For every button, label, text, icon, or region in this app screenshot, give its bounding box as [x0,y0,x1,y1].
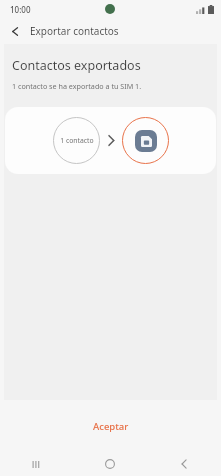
button[interactable]: Back [147,452,221,476]
button[interactable]: Back [0,18,30,44]
button[interactable]: 1 contacto [5,107,216,174]
staticText: Exportar contactos [30,24,119,38]
button[interactable]: Home [73,452,147,476]
button[interactable]: Recent apps [0,452,73,476]
staticText: 1 contacto [60,136,94,145]
staticText: Aceptar [93,420,129,433]
staticText: 1 contacto se ha exportado a tu SIM 1. [12,81,142,91]
staticText: Contactos exportados [12,57,141,74]
staticText: 10:00 [10,4,31,15]
button[interactable]: Aceptar [93,420,129,433]
